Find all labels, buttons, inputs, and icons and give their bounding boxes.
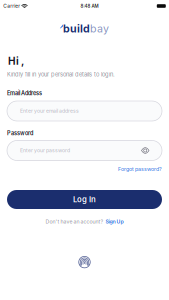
staticText: Sign Up <box>105 218 123 225</box>
staticText: Enter your email address <box>20 108 79 114</box>
button[interactable]: Sign Up <box>105 218 123 225</box>
button[interactable]: Sign in with fingerprint <box>79 256 90 269</box>
staticText: Log In <box>73 195 96 204</box>
staticText: build <box>63 22 90 35</box>
staticText: 8:48 AM <box>81 3 99 9</box>
staticText: Email Address <box>7 90 42 97</box>
button[interactable]: Forgot password? <box>7 165 162 173</box>
staticText: Kindly fill in your personal details to … <box>7 71 115 78</box>
staticText: Enter your password <box>20 147 70 154</box>
staticText: Forgot password? <box>118 166 162 172</box>
staticText: Carrier <box>3 3 20 9</box>
staticText: Hi , <box>8 55 24 67</box>
button[interactable]: Log In <box>7 190 162 209</box>
staticText: bay <box>90 22 109 35</box>
staticText: Don't have an account? <box>46 218 104 225</box>
staticText: Password <box>7 130 33 137</box>
